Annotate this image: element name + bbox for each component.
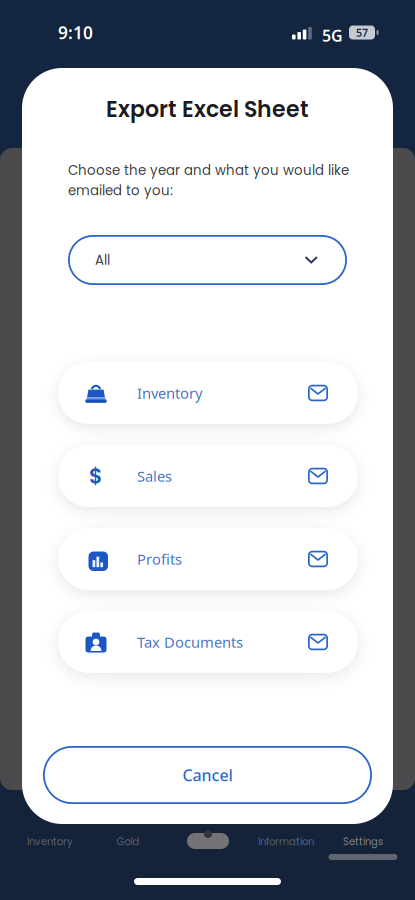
- staticText: Settings: [343, 835, 383, 849]
- staticText: Inventory: [27, 835, 73, 849]
- button[interactable]: $: [58, 445, 358, 507]
- staticText: 9:10: [58, 21, 93, 44]
- staticText: $: [89, 461, 103, 490]
- staticText: Cancel: [182, 764, 232, 786]
- staticText: Profits: [137, 549, 182, 569]
- button[interactable]: Tax Documents: [58, 611, 358, 673]
- staticText: Information: [258, 835, 314, 849]
- staticText: 5G: [322, 25, 343, 46]
- staticText: Tax Documents: [137, 632, 243, 652]
- staticText: Inventory: [137, 383, 202, 403]
- staticText: Choose the year and what you would like …: [68, 161, 349, 200]
- button[interactable]: Inventory: [58, 362, 358, 424]
- button[interactable]: All: [68, 235, 347, 285]
- staticText: Gold: [116, 835, 139, 849]
- button[interactable]: Profits: [58, 528, 358, 590]
- staticText: Sales: [137, 466, 172, 486]
- button[interactable]: Cancel: [43, 746, 372, 804]
- staticText: All: [95, 251, 110, 269]
- staticText: Export Excel Sheet: [106, 94, 309, 125]
- staticText: 57: [356, 25, 368, 40]
